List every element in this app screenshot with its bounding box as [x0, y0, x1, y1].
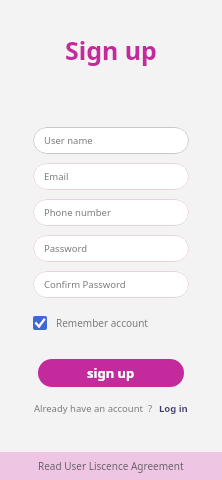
staticText: sign up — [87, 364, 135, 382]
button[interactable]: Read User Liscence Agreement — [0, 452, 222, 480]
staticText: Password — [44, 242, 87, 255]
button[interactable]: Remember account — [33, 316, 148, 330]
staticText: Email — [44, 170, 69, 183]
button[interactable]: User name — [33, 127, 189, 154]
staticText: Log in — [159, 402, 188, 415]
staticText: Remember account — [56, 316, 148, 330]
staticText: Already have an account ? — [34, 402, 153, 415]
button[interactable]: Phone number — [33, 199, 189, 226]
staticText: Read User Liscence Agreement — [38, 459, 184, 473]
staticText: Confirm Password — [44, 278, 126, 291]
button[interactable]: Log in — [159, 402, 188, 415]
staticText: User name — [44, 134, 93, 147]
button[interactable]: Email — [33, 163, 189, 190]
button[interactable]: sign up — [38, 359, 184, 387]
button[interactable]: Password — [33, 235, 189, 262]
button[interactable]: Confirm Password — [33, 271, 189, 298]
staticText: Sign up — [65, 33, 157, 67]
staticText: Phone number — [44, 206, 111, 219]
